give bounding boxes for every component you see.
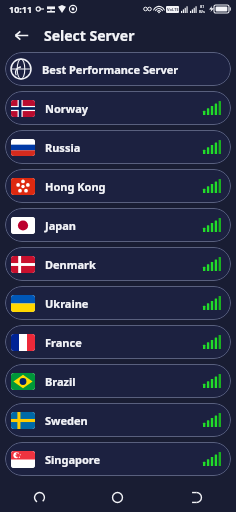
button[interactable]: Recents bbox=[0, 482, 78, 512]
staticText: Singapore bbox=[45, 452, 101, 467]
staticText: Denmark bbox=[45, 257, 96, 272]
button[interactable]: Hong Kong bbox=[5, 169, 231, 203]
button[interactable]: Denmark bbox=[5, 247, 231, 281]
staticText: France bbox=[45, 335, 82, 350]
button[interactable]: Sweden bbox=[5, 403, 231, 437]
button[interactable]: Best Performance Server bbox=[5, 52, 231, 86]
button[interactable]: Home bbox=[78, 482, 157, 512]
staticText: Ukraine bbox=[45, 296, 89, 311]
staticText: B/s bbox=[199, 9, 206, 14]
staticText: Hong Kong bbox=[45, 179, 106, 194]
button[interactable]: Back bbox=[157, 482, 236, 512]
button[interactable]: Back bbox=[8, 22, 34, 48]
button[interactable]: Norway bbox=[5, 91, 231, 125]
button[interactable]: Russia bbox=[5, 130, 231, 164]
button[interactable]: Ukraine bbox=[5, 286, 231, 320]
staticText: Norway bbox=[45, 101, 89, 116]
button[interactable]: Japan bbox=[5, 208, 231, 242]
button[interactable]: France bbox=[5, 325, 231, 359]
staticText: Sweden bbox=[45, 413, 88, 428]
staticText: Best Performance Server bbox=[42, 62, 179, 77]
staticText: Russia bbox=[45, 140, 81, 155]
staticText: 10:11 bbox=[9, 3, 33, 15]
staticText: Brazil bbox=[45, 374, 76, 389]
staticText: Japan bbox=[45, 218, 76, 233]
staticText: 81 bbox=[200, 4, 205, 9]
button[interactable]: Singapore bbox=[5, 442, 231, 476]
staticText: Select Server bbox=[44, 26, 135, 45]
button[interactable]: Brazil bbox=[5, 364, 231, 398]
staticText: VoLTE bbox=[167, 7, 179, 12]
